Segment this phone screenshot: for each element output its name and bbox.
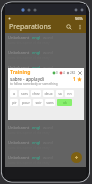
staticText: Unbekannt [8,95,30,100]
staticText: Unbekannt [8,65,30,70]
staticText: Preparations [9,22,52,32]
staticText: engl [32,125,41,130]
staticText: 0 [56,71,58,75]
staticText: word [43,50,53,55]
button[interactable]: deux [43,90,54,97]
button[interactable]: Unbekannt [8,33,83,48]
button[interactable]: pir [10,99,18,106]
staticText: engl [32,80,41,85]
staticText: 56% [75,16,83,21]
staticText: pour [22,100,30,105]
button[interactable]: Search [63,21,75,33]
button[interactable]: Unbekannt [8,123,83,138]
button[interactable]: Add [71,152,82,163]
staticText: Unbekannt [8,35,30,40]
staticText: engl [32,155,41,160]
button[interactable]: sors [19,90,29,97]
staticText: sabre - applaydi [10,76,45,82]
staticText: Unbekannt [8,155,30,160]
button[interactable]: Unbekannt [8,138,83,153]
staticText: word [43,80,53,85]
button[interactable]: a [10,90,17,97]
staticText: soir [35,100,42,105]
button[interactable]: Unbekannt [8,78,83,93]
button[interactable]: ok [57,99,72,106]
staticText: Unbekannt [8,80,30,85]
button[interactable]: chez [31,90,41,97]
staticText: engl [32,95,41,100]
button[interactable]: Unbekannt [8,93,83,108]
button[interactable]: Unbekannt [8,48,83,63]
staticText: word [43,65,53,70]
staticText: Training [10,69,31,76]
staticText: engl [32,65,41,70]
staticText: word [43,95,53,100]
button[interactable]: Unbekannt [8,153,83,167]
button[interactable]: Close [77,70,83,76]
staticText: 1 [73,76,76,82]
button[interactable]: More options [75,22,85,32]
staticText: Unbekannt [8,50,30,55]
staticText: a [13,91,15,96]
staticText: 282 [70,71,76,75]
staticText: 4 [63,71,65,75]
staticText: word [43,155,53,160]
staticText: Unbekannt [8,140,30,145]
button[interactable]: sans [45,99,55,106]
staticText: sors [21,91,28,96]
staticText: some description of the entry [8,71,50,75]
staticText: sans [46,100,54,105]
staticText: word [43,35,53,40]
staticText: engl [32,50,41,55]
staticText: chez [32,91,40,96]
staticText: sa [58,91,62,96]
staticText: pir [12,100,17,105]
button[interactable]: Unbekannt [8,63,83,78]
staticText: word [43,125,53,130]
button[interactable]: pour [20,99,31,106]
button[interactable]: soir [33,99,43,106]
staticText: Unbekannt [8,125,30,130]
button[interactable]: sa [56,90,63,97]
button[interactable]: nn [65,90,74,97]
staticText: word [43,140,53,145]
staticText: some description of the entry [8,101,50,105]
button[interactable]: Unbekannt [8,108,83,123]
staticText: engl [32,140,41,145]
staticText: ok [63,100,67,105]
staticText: engl [32,35,41,40]
staticText: nn [67,91,72,96]
staticText: to follow somebody or something [10,82,58,86]
staticText: deux [44,91,53,96]
staticText: some description of the entry [8,86,50,90]
